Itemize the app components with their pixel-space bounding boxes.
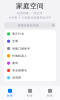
staticText: 标签 [47, 94, 53, 97]
button[interactable]: 扫地机器人 [4, 52, 56, 59]
staticText: 标签 [7, 94, 13, 97]
button[interactable]: 窗帘 [4, 59, 56, 67]
staticText: 搜索设备或场景 [18, 24, 39, 27]
button[interactable]: 空调 [4, 38, 56, 45]
button[interactable]: 智能门锁助手 [4, 45, 56, 52]
staticText: 标签 [27, 94, 33, 97]
staticText: 扫地机器人 [12, 54, 27, 57]
staticText: 家庭空间 [16, 2, 44, 10]
staticText: 空调 [12, 40, 18, 43]
button[interactable]: 客厅灯光 [4, 30, 56, 38]
staticText: 安全摄像头 [12, 69, 27, 72]
staticText: 欢迎回家, 一切正常 [17, 11, 43, 15]
button[interactable]: 搜索设备或场景 [0, 22, 60, 28]
staticText: 窗帘 [12, 61, 18, 65]
staticText: 今天有 7 个设备已连接并运行中 [8, 16, 51, 19]
button[interactable]: 温湿度 [4, 74, 56, 81]
staticText: 智能门锁助手 [12, 47, 30, 50]
button[interactable]: Tab [20, 86, 40, 100]
staticText: 客厅灯光 [12, 32, 24, 36]
button[interactable]: Tab [0, 86, 20, 100]
button[interactable]: Tab [40, 86, 60, 100]
button[interactable]: 安全摄像头 [4, 67, 56, 74]
staticText: 温湿度 [12, 76, 21, 79]
